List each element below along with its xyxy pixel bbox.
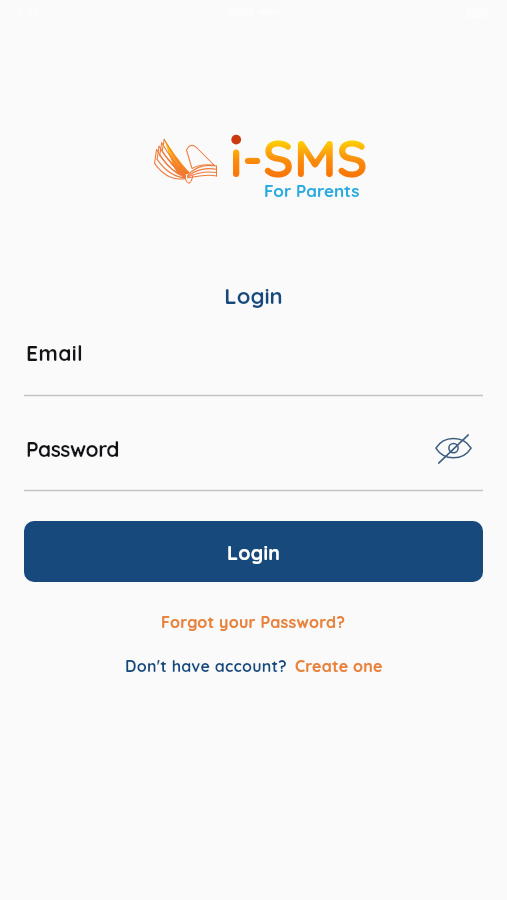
button[interactable]: Login [24,521,483,582]
staticText: Login [227,540,281,564]
button[interactable]: Show password [429,428,478,470]
staticText: Email [26,340,84,366]
staticText: Login [0,282,507,310]
staticText: Password [26,436,120,462]
button[interactable]: Create one [295,656,383,676]
staticText: For Parents [264,180,360,201]
button[interactable]: Forgot your Password? [161,612,346,632]
staticText: Don't have account? [125,656,287,676]
staticText: i-SMS [230,125,368,190]
